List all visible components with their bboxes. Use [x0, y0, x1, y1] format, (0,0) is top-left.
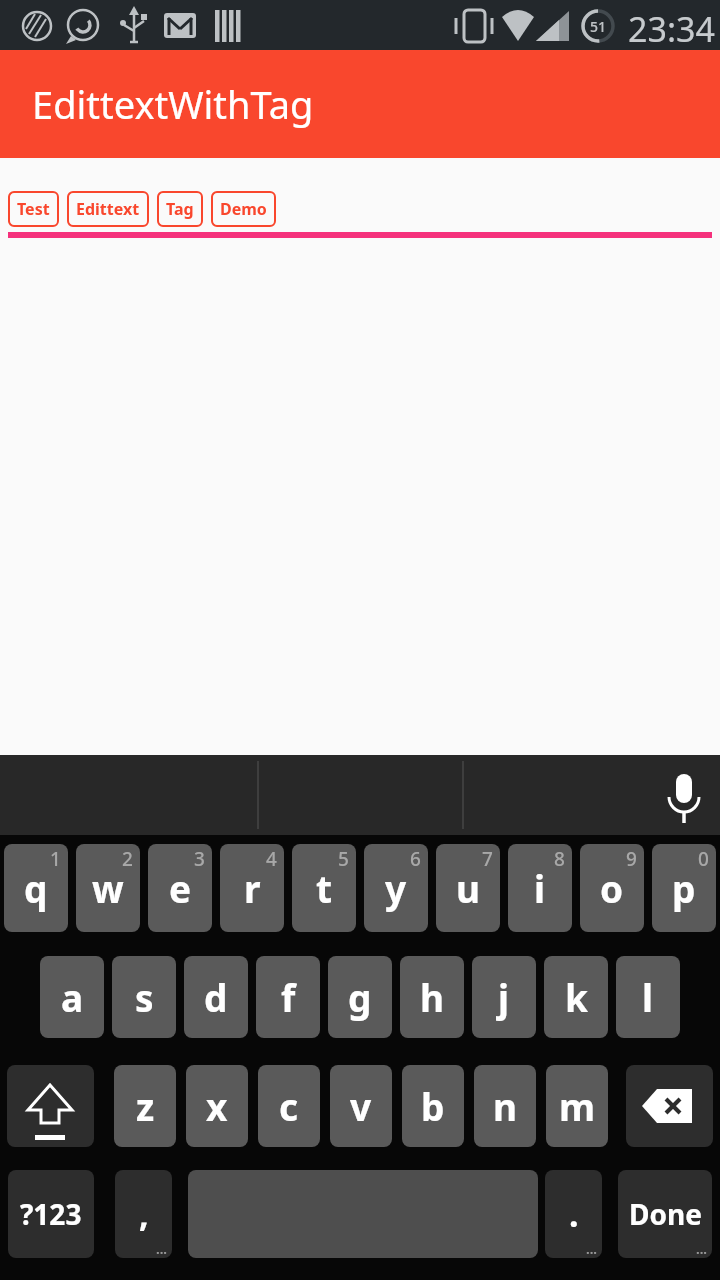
staticText: c: [279, 1081, 299, 1131]
button[interactable]: w: [76, 844, 140, 932]
button[interactable]: ?123: [8, 1170, 94, 1258]
button[interactable]: u: [436, 844, 500, 932]
button[interactable]: f: [256, 956, 320, 1038]
staticText: ...: [586, 1240, 597, 1258]
staticText: 9: [626, 846, 637, 872]
staticText: 6: [410, 846, 421, 872]
staticText: m: [559, 1081, 596, 1131]
button[interactable]: n: [474, 1065, 536, 1147]
staticText: ...: [156, 1240, 167, 1258]
button[interactable]: [626, 1065, 713, 1147]
staticText: g: [348, 972, 372, 1022]
staticText: u: [456, 863, 481, 913]
staticText: p: [672, 863, 696, 913]
staticText: h: [420, 972, 445, 1022]
button[interactable]: j: [472, 956, 536, 1038]
button[interactable]: Demo: [211, 191, 276, 227]
staticText: i: [534, 863, 546, 913]
button[interactable]: q: [4, 844, 68, 932]
button[interactable]: t: [292, 844, 356, 932]
button[interactable]: x: [186, 1065, 248, 1147]
staticText: s: [135, 972, 154, 1022]
staticText: 2: [122, 846, 133, 872]
button[interactable]: Done: [618, 1170, 712, 1258]
button[interactable]: [7, 1065, 94, 1147]
button[interactable]: .: [545, 1170, 602, 1258]
button[interactable]: ,: [115, 1170, 172, 1258]
staticText: ...: [696, 1240, 707, 1258]
staticText: Tag: [166, 198, 194, 220]
staticText: 7: [482, 846, 493, 872]
staticText: r: [244, 863, 261, 913]
button[interactable]: s: [112, 956, 176, 1038]
staticText: l: [642, 972, 654, 1022]
staticText: 4: [266, 846, 277, 872]
staticText: q: [24, 863, 48, 913]
staticText: d: [204, 972, 228, 1022]
button[interactable]: b: [402, 1065, 464, 1147]
staticText: z: [136, 1081, 155, 1131]
staticText: k: [565, 972, 588, 1022]
staticText: ,: [139, 1191, 149, 1237]
staticText: Edittext: [76, 198, 140, 220]
staticText: 51: [590, 17, 607, 36]
button[interactable]: g: [328, 956, 392, 1038]
staticText: 0: [698, 846, 709, 872]
button[interactable]: m: [546, 1065, 608, 1147]
button[interactable]: e: [148, 844, 212, 932]
staticText: o: [600, 863, 624, 913]
staticText: Test: [17, 198, 50, 220]
staticText: 8: [554, 846, 565, 872]
staticText: 1: [50, 846, 61, 872]
staticText: 3: [194, 846, 205, 872]
button[interactable]: Tag: [157, 191, 203, 227]
button[interactable]: l: [616, 956, 680, 1038]
staticText: a: [61, 972, 84, 1022]
button[interactable]: d: [184, 956, 248, 1038]
button[interactable]: i: [508, 844, 572, 932]
button[interactable]: v: [330, 1065, 392, 1147]
staticText: 5: [338, 846, 349, 872]
staticText: w: [92, 863, 124, 913]
button[interactable]: y: [364, 844, 428, 932]
button[interactable]: p: [652, 844, 716, 932]
staticText: 23:34: [628, 6, 715, 52]
staticText: EdittextWithTag: [32, 78, 314, 130]
staticText: e: [169, 863, 192, 913]
staticText: t: [316, 863, 333, 913]
button[interactable]: k: [544, 956, 608, 1038]
staticText: b: [421, 1081, 445, 1131]
button[interactable]: Edittext: [67, 191, 149, 227]
staticText: x: [206, 1081, 228, 1131]
staticText: v: [350, 1081, 372, 1131]
button[interactable]: h: [400, 956, 464, 1038]
button[interactable]: r: [220, 844, 284, 932]
button[interactable]: Test: [8, 191, 59, 227]
button[interactable]: c: [258, 1065, 320, 1147]
button[interactable]: a: [40, 956, 104, 1038]
staticText: ?123: [20, 1195, 82, 1233]
button[interactable]: z: [114, 1065, 176, 1147]
staticText: j: [498, 972, 510, 1022]
staticText: y: [385, 863, 407, 913]
staticText: Done: [629, 1195, 702, 1233]
staticText: f: [281, 972, 296, 1022]
button[interactable]: [664, 770, 704, 830]
staticText: .: [569, 1191, 579, 1237]
staticText: Demo: [220, 198, 267, 220]
staticText: n: [493, 1081, 518, 1131]
button[interactable]: o: [580, 844, 644, 932]
